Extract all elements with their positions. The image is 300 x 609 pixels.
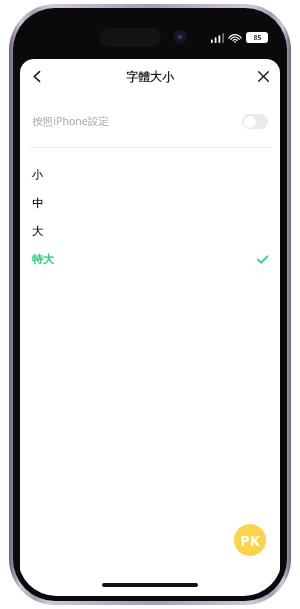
button[interactable]: PK — [234, 524, 266, 556]
staticText: 特大 — [32, 252, 54, 266]
staticText: 85 — [253, 33, 262, 43]
button[interactable]: Follow iPhone setting toggle — [242, 114, 268, 129]
staticText: 大 — [32, 224, 43, 238]
button[interactable]: 中 — [20, 189, 280, 217]
button[interactable]: 特大 — [20, 245, 280, 273]
button[interactable]: 按照iPhone設定 — [20, 106, 280, 136]
staticText: 字體大小 — [126, 69, 174, 84]
staticText: PK — [240, 530, 260, 550]
button[interactable]: Close — [246, 59, 280, 93]
button[interactable]: Back — [20, 59, 54, 93]
staticText: 中 — [32, 196, 43, 210]
button[interactable]: 小 — [20, 161, 280, 189]
button[interactable]: 大 — [20, 217, 280, 245]
staticText: 小 — [32, 168, 43, 182]
staticText: 按照iPhone設定 — [32, 114, 109, 128]
